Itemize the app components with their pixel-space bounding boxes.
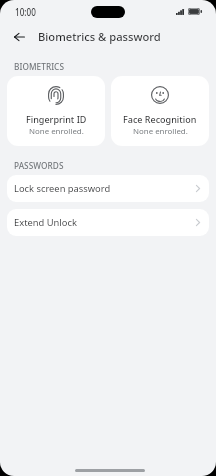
- button[interactable]: Face Recognition: [111, 76, 209, 146]
- button[interactable]: Extend Unlock: [7, 209, 209, 236]
- staticText: BIOMETRICS: [14, 61, 65, 72]
- staticText: 10:00: [15, 4, 36, 19]
- staticText: Extend Unlock: [14, 216, 196, 229]
- button[interactable]: Lock screen password: [7, 175, 209, 202]
- staticText: Biometrics & password: [38, 29, 161, 44]
- button[interactable]: Fingerprint ID: [7, 76, 105, 146]
- staticText: None enrolled.: [133, 126, 188, 137]
- staticText: None enrolled.: [29, 126, 84, 137]
- staticText: Lock screen password: [14, 182, 196, 195]
- staticText: Fingerprint ID: [26, 113, 87, 125]
- staticText: Face Recognition: [123, 113, 197, 125]
- button[interactable]: Back: [6, 26, 33, 48]
- staticText: PASSWORDS: [14, 160, 64, 171]
